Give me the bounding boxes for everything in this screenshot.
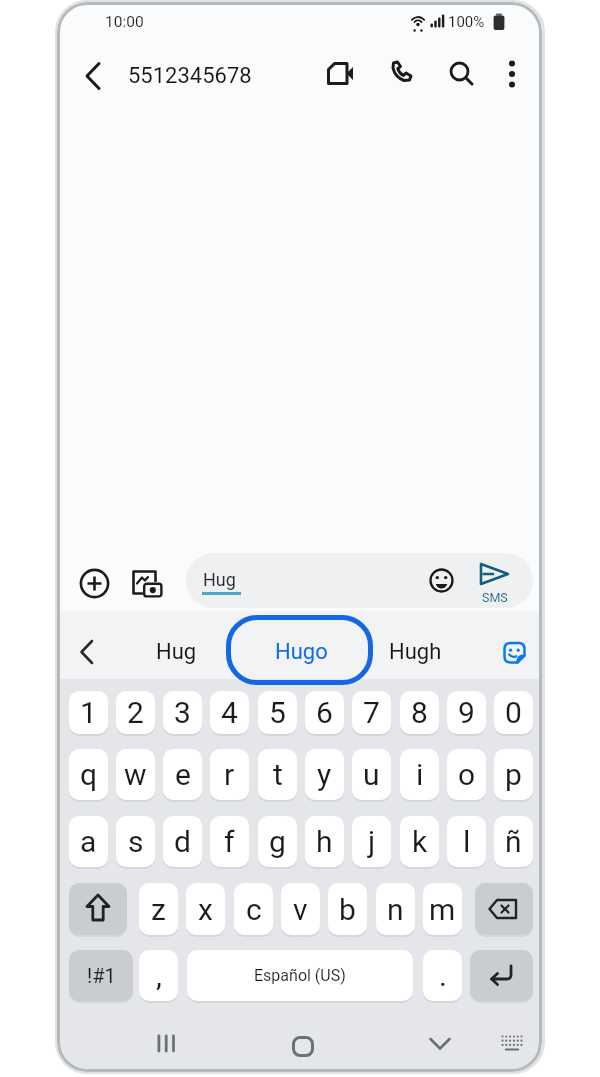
staticText: Hug <box>156 639 197 665</box>
staticText: 100% <box>448 13 485 31</box>
button[interactable]: Hug <box>186 553 533 608</box>
button[interactable] <box>79 568 110 599</box>
button[interactable] <box>429 1036 451 1052</box>
button[interactable]: 6 <box>305 691 344 734</box>
staticText: 5 <box>269 695 286 730</box>
button[interactable]: , <box>139 950 178 1001</box>
staticText: a <box>80 824 97 859</box>
button[interactable]: Español (US) <box>187 950 413 1001</box>
button[interactable]: 1 <box>69 691 108 734</box>
button[interactable]: t <box>258 749 297 800</box>
button[interactable]: a <box>69 816 108 867</box>
button[interactable] <box>292 1036 314 1057</box>
button[interactable]: h <box>305 816 344 867</box>
button[interactable] <box>78 60 108 92</box>
staticText: k <box>412 824 428 859</box>
staticText: n <box>387 892 404 927</box>
button[interactable] <box>69 883 127 935</box>
staticText: . <box>439 958 447 993</box>
staticText: e <box>175 757 191 792</box>
staticText: Español (US) <box>254 966 346 985</box>
staticText: j <box>368 824 376 859</box>
button[interactable]: g <box>258 816 297 867</box>
button[interactable]: i <box>400 749 439 800</box>
button[interactable]: q <box>69 749 108 800</box>
staticText: u <box>363 757 380 792</box>
staticText: 2 <box>127 695 144 730</box>
button[interactable] <box>503 641 526 665</box>
button[interactable]: f <box>210 816 249 867</box>
button[interactable]: 3 <box>163 691 202 734</box>
button[interactable]: Hugo <box>256 638 346 666</box>
button[interactable]: v <box>281 883 320 935</box>
button[interactable]: s <box>116 816 155 867</box>
button[interactable]: z <box>139 883 178 935</box>
staticText: v <box>293 892 308 927</box>
button[interactable]: l <box>447 816 486 867</box>
button[interactable]: k <box>400 816 439 867</box>
button[interactable]: n <box>376 883 415 935</box>
button[interactable]: Hugh <box>370 638 460 666</box>
button[interactable] <box>501 1035 523 1053</box>
staticText: y <box>317 757 332 792</box>
button[interactable]: o <box>447 749 486 800</box>
button[interactable]: 4 <box>210 691 249 734</box>
staticText: o <box>458 757 476 792</box>
staticText: r <box>224 757 235 792</box>
button[interactable] <box>387 59 415 89</box>
staticText: w <box>124 757 147 792</box>
button[interactable] <box>131 568 165 600</box>
button[interactable]: b <box>328 883 367 935</box>
button[interactable]: 9 <box>447 691 486 734</box>
button[interactable]: 8 <box>400 691 439 734</box>
button[interactable] <box>156 1034 178 1053</box>
button[interactable]: p <box>494 749 533 800</box>
button[interactable] <box>324 60 356 88</box>
staticText: , <box>156 958 162 993</box>
button[interactable]: r <box>210 749 249 800</box>
button[interactable] <box>76 638 98 666</box>
staticText: b <box>339 892 356 927</box>
button[interactable] <box>470 950 533 1001</box>
button[interactable]: j <box>352 816 391 867</box>
button[interactable]: e <box>163 749 202 800</box>
button[interactable]: d <box>163 816 202 867</box>
staticText: 5512345678 <box>128 63 252 89</box>
button[interactable]: u <box>352 749 391 800</box>
button[interactable]: SMS <box>474 559 516 605</box>
button[interactable]: y <box>305 749 344 800</box>
button[interactable]: . <box>423 950 462 1001</box>
button[interactable]: m <box>423 883 462 935</box>
staticText: SMS <box>482 590 508 605</box>
button[interactable]: w <box>116 749 155 800</box>
staticText: Hugo <box>275 639 328 665</box>
staticText: 10:00 <box>105 13 144 31</box>
staticText: l <box>463 824 471 859</box>
button[interactable]: x <box>186 883 225 935</box>
staticText: 7 <box>363 695 380 730</box>
button[interactable] <box>502 59 522 89</box>
button[interactable]: 0 <box>494 691 533 734</box>
staticText: g <box>269 824 286 859</box>
staticText: q <box>80 757 98 792</box>
staticText: !#1 <box>87 964 116 987</box>
button[interactable]: Hug <box>131 638 221 666</box>
button[interactable]: 5 <box>258 691 297 734</box>
staticText: t <box>273 757 283 792</box>
button[interactable]: 2 <box>116 691 155 734</box>
staticText: h <box>316 824 333 859</box>
staticText: 8 <box>411 695 428 730</box>
staticText: ñ <box>505 824 522 859</box>
button[interactable]: c <box>234 883 273 935</box>
button[interactable] <box>429 568 454 593</box>
staticText: x <box>198 892 213 927</box>
button[interactable] <box>475 883 533 935</box>
staticText: 3 <box>174 695 191 730</box>
staticText: z <box>151 892 166 927</box>
button[interactable] <box>447 59 477 89</box>
button[interactable]: ñ <box>494 816 533 867</box>
button[interactable]: 7 <box>352 691 391 734</box>
button[interactable]: !#1 <box>69 950 133 1001</box>
staticText: f <box>224 824 235 859</box>
staticText: d <box>174 824 191 859</box>
